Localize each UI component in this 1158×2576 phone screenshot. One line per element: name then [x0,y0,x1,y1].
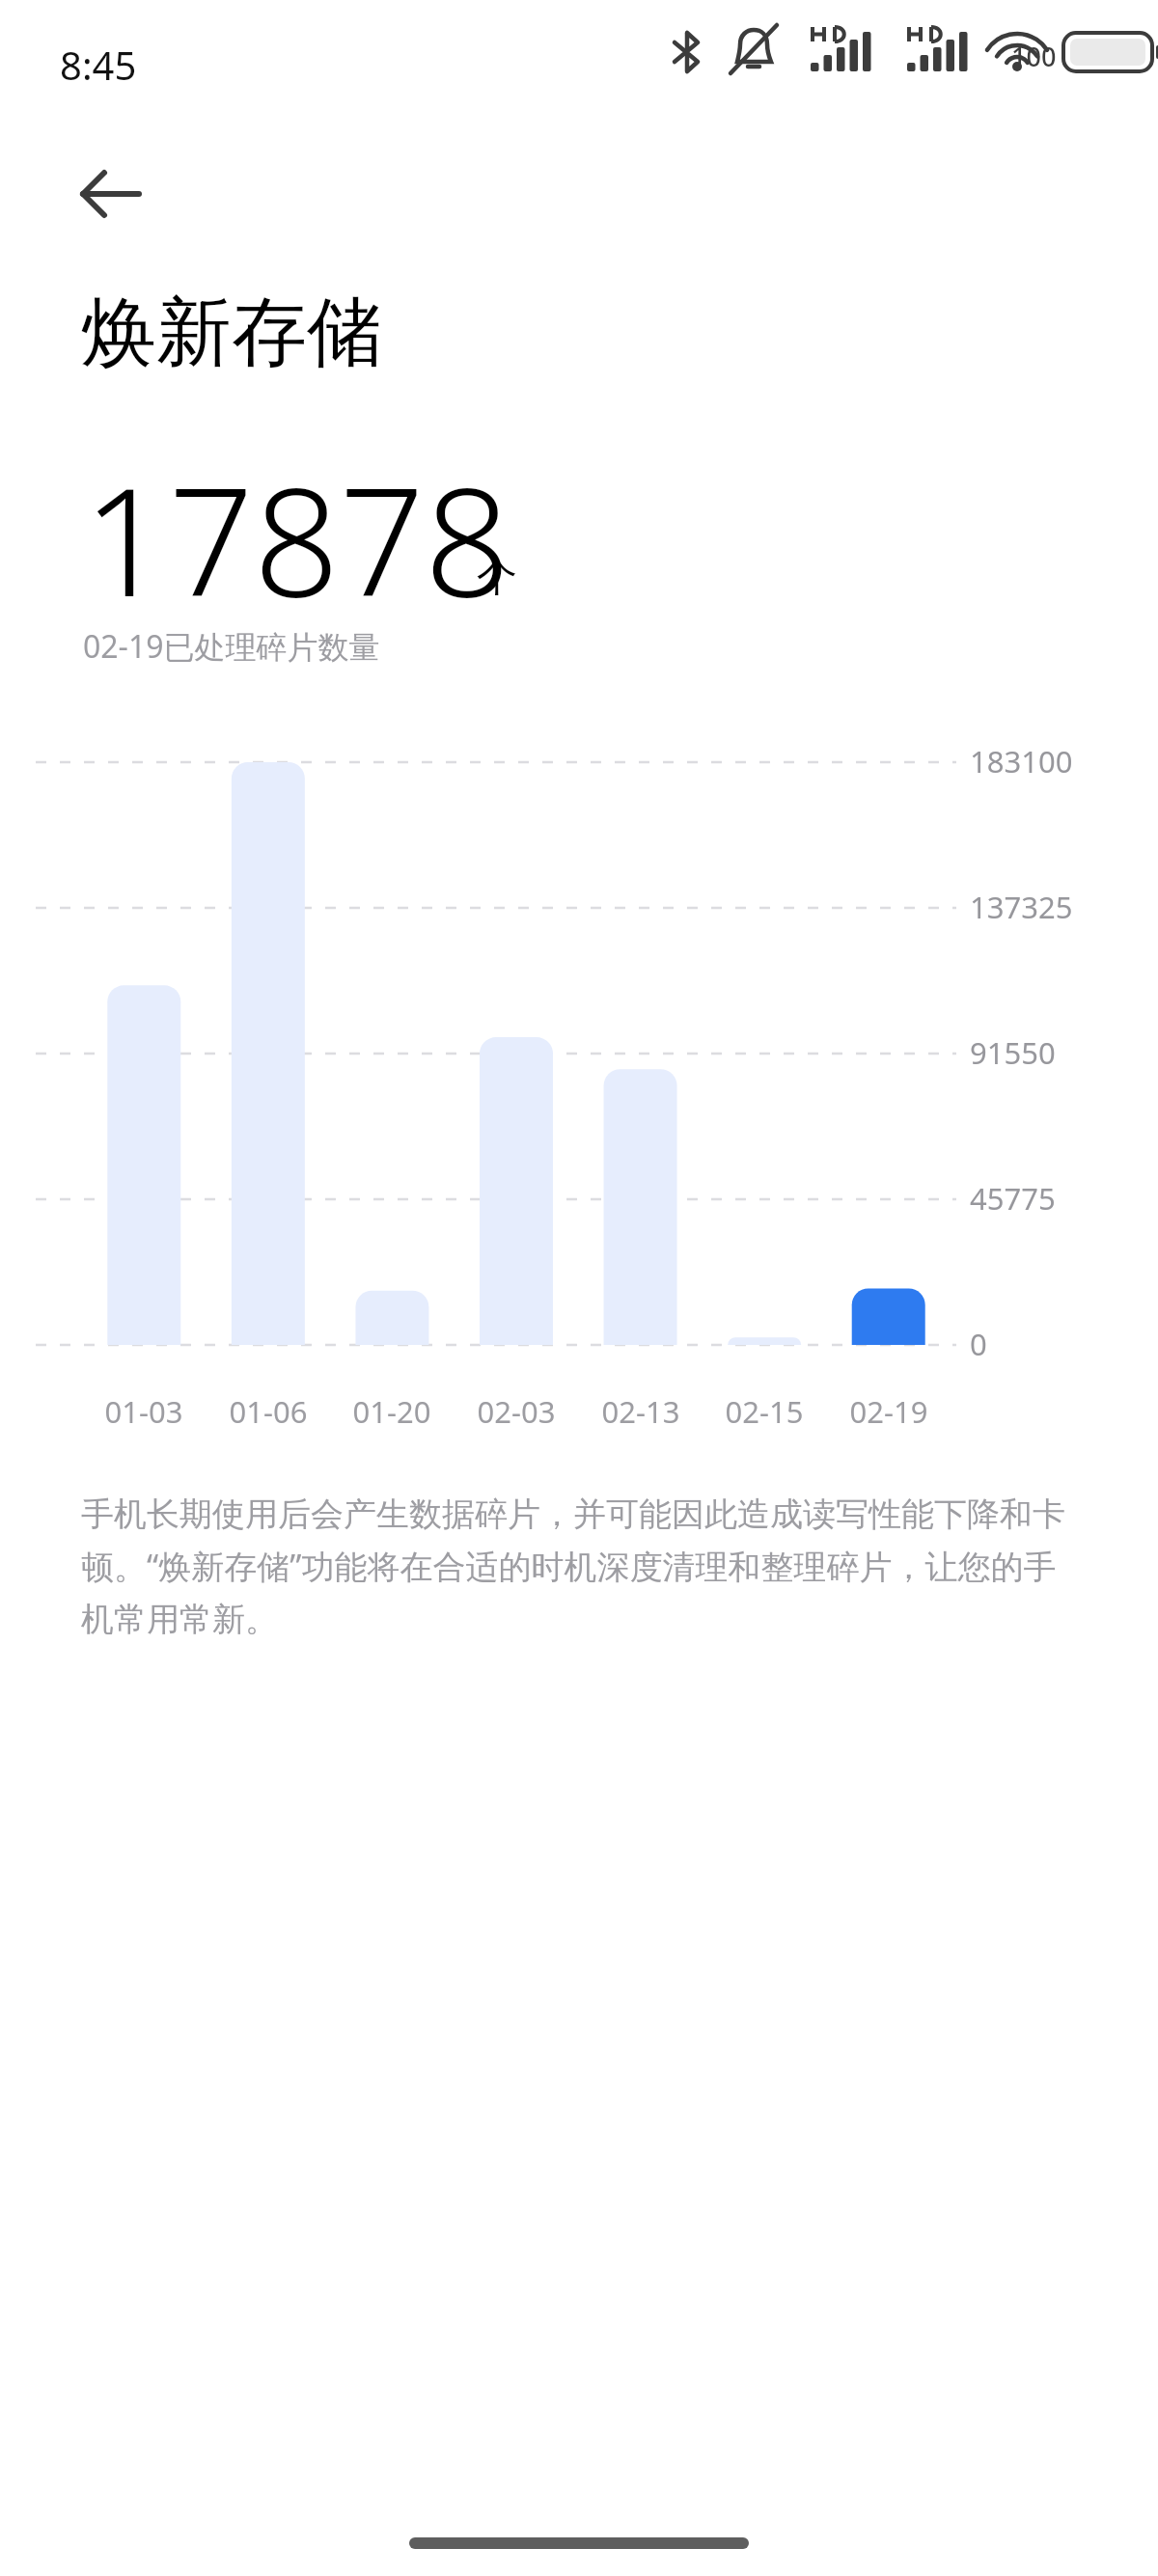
staticText: 02-19 [821,1391,956,1432]
staticText: 8:45 [60,39,137,91]
staticText: 01-06 [201,1391,336,1432]
staticText: 183100 [970,741,1073,781]
staticText: 100 [1011,39,1057,74]
staticText: 0 [970,1324,987,1364]
staticText: 手机长期使用后会产生数据碎片，并可能因此造成读写性能下降和卡顿。“焕新存储”功能… [81,1494,1080,1640]
staticText: 137325 [970,887,1073,927]
staticText: 焕新存储 [81,286,382,380]
staticText: 01-03 [76,1391,211,1432]
staticText: 45775 [970,1178,1056,1219]
staticText: 个 [477,552,517,603]
staticText: 02-19已处理碎片数量 [83,625,380,668]
button[interactable]: Back [58,141,164,247]
staticText: 02-15 [697,1391,832,1432]
staticText: 91550 [970,1032,1056,1073]
staticText: 02-03 [449,1391,584,1432]
staticText: 02-13 [573,1391,708,1432]
staticText: 01-20 [324,1391,459,1432]
staticText: 17878 [83,436,510,640]
